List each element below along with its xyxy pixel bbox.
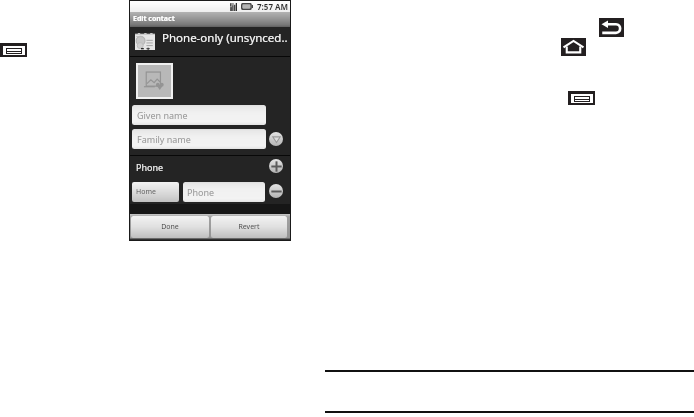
button[interactable]: Menu key xyxy=(0,43,27,57)
staticText: Phone xyxy=(187,186,215,198)
button[interactable]: Home xyxy=(132,182,179,202)
button[interactable]: Phone xyxy=(183,182,265,202)
staticText: Phone xyxy=(136,161,164,173)
button[interactable]: Back key xyxy=(599,18,624,37)
staticText: Phone-only (unsynced.. xyxy=(162,30,288,46)
staticText: Revert xyxy=(238,222,260,232)
button[interactable]: Add contact photo xyxy=(138,65,171,97)
button[interactable]: Menu key xyxy=(568,91,595,105)
button[interactable]: Revert xyxy=(211,216,287,238)
button[interactable]: Remove phone xyxy=(269,184,283,198)
staticText: Done xyxy=(161,222,179,232)
button[interactable]: Expand name fields xyxy=(269,132,283,146)
button[interactable]: Done xyxy=(131,216,209,238)
staticText: 7:57 AM xyxy=(257,1,289,12)
staticText: Given name xyxy=(137,109,188,121)
button[interactable]: Add phone xyxy=(269,159,283,173)
button[interactable]: Family name xyxy=(132,129,266,149)
button[interactable]: Home key xyxy=(561,38,586,56)
button[interactable]: Given name xyxy=(132,105,266,125)
staticText: Home xyxy=(136,187,156,197)
staticText: Edit contact xyxy=(133,14,175,24)
staticText: Family name xyxy=(137,133,191,145)
